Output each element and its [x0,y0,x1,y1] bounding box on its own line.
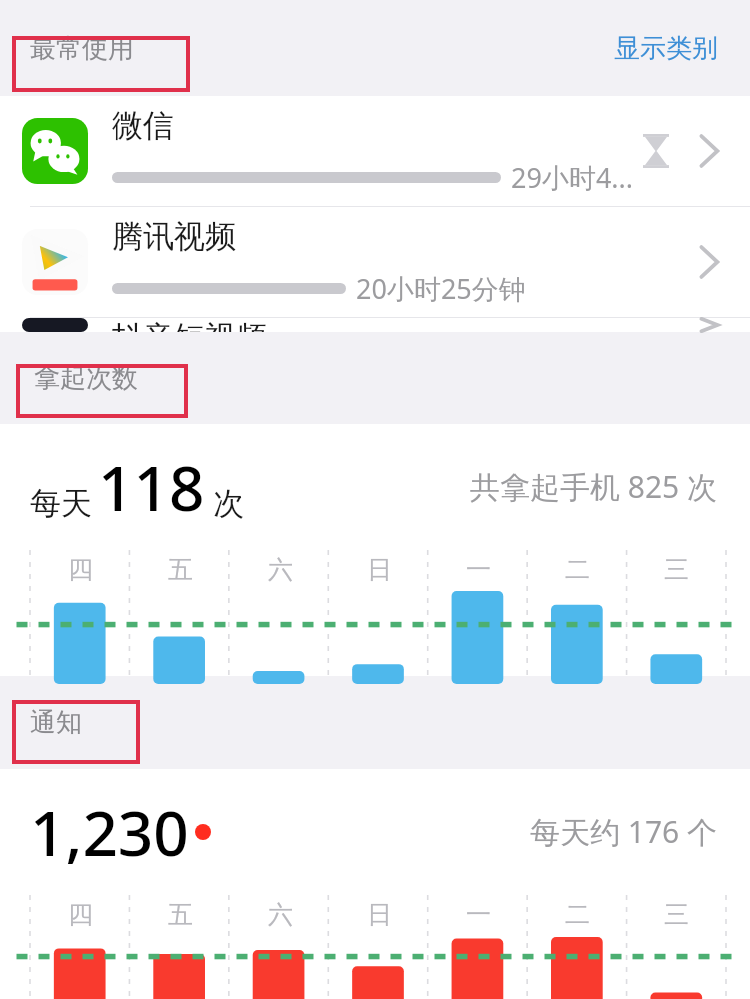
other: Open details [690,243,728,281]
staticText: 腾讯视频 [112,217,236,256]
staticText: 拿起次数 [34,362,138,395]
staticText: 日 [367,554,392,585]
staticText: 六 [268,899,293,930]
staticText: 日 [367,899,392,930]
staticText: 次 [213,484,244,523]
staticText: 118 [98,445,205,529]
staticText: 最常使用 [30,32,134,65]
staticText: 一 [466,554,491,585]
button[interactable]: 抖音短视频 [0,318,750,332]
staticText: 共拿起手机 825 次 [470,466,718,507]
staticText: 二 [565,899,590,930]
staticText: 三 [664,899,689,930]
button[interactable]: 显示类别 [614,32,718,65]
button[interactable]: 微信 [0,96,750,206]
staticText: 显示类别 [614,32,718,65]
staticText: 四 [68,554,93,585]
staticText: 六 [268,554,293,585]
staticText: 四 [68,899,93,930]
staticText: 五 [168,899,193,930]
staticText: 20小时25分钟 [356,270,526,307]
staticText: 微信 [112,106,174,145]
button[interactable]: 腾讯视频 [0,207,750,317]
staticText: 每天 [30,484,92,523]
other: Time limit [634,129,678,173]
staticText: 29小时4... [511,159,634,196]
staticText: 二 [565,554,590,585]
staticText: 抖音短视频 [112,318,267,332]
staticText: 1,230 [30,790,189,874]
staticText: 通知 [30,706,82,739]
staticText: 三 [664,554,689,585]
staticText: 每天约 176 个 [530,811,718,852]
staticText: 一 [466,899,491,930]
other: Open details [690,318,728,332]
other: Open details [690,132,728,170]
staticText: 五 [168,554,193,585]
